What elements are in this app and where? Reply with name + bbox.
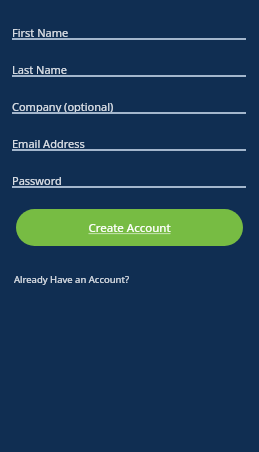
button[interactable]: Create Account — [16, 209, 243, 246]
staticText: First Name — [12, 25, 69, 40]
button[interactable]: Last Name — [12, 59, 246, 96]
staticText: Last Name — [12, 62, 68, 77]
button[interactable]: Password — [12, 170, 246, 207]
button[interactable]: Already Have an Account? — [13, 271, 131, 288]
staticText: Already Have an Account? — [14, 273, 130, 286]
button[interactable]: Email Address — [12, 133, 246, 170]
staticText: Email Address — [12, 136, 85, 151]
staticText: Create Account — [88, 220, 171, 236]
staticText: Password — [12, 173, 62, 188]
staticText: Company (optional) — [12, 99, 114, 114]
button[interactable]: Company (optional) — [12, 96, 246, 133]
button[interactable]: First Name — [12, 22, 246, 59]
